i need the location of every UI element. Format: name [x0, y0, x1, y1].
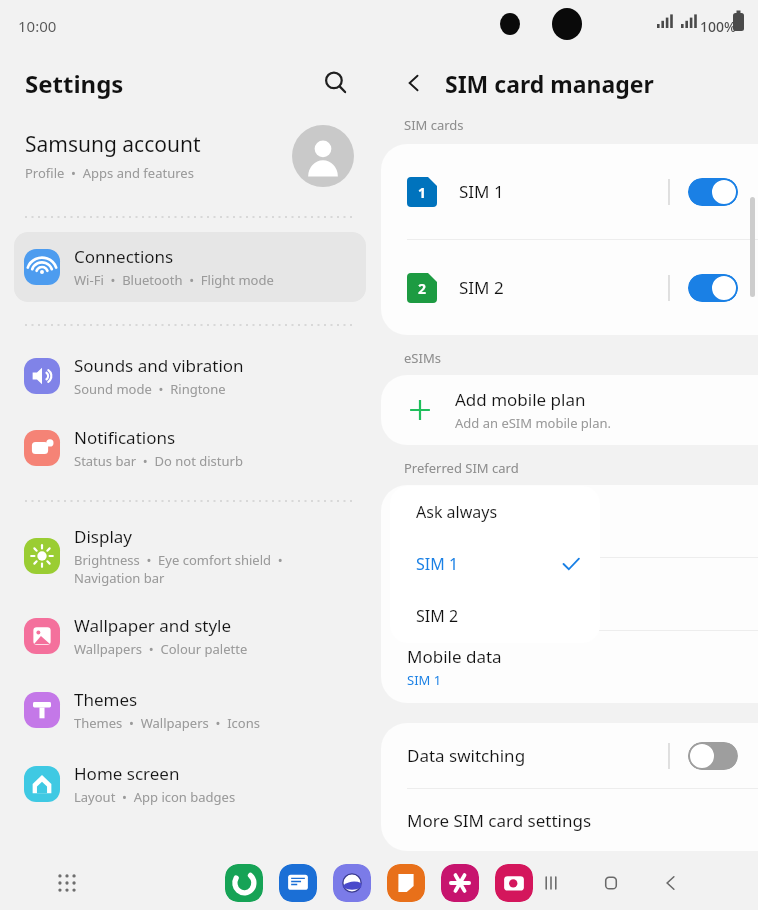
staticText: More SIM card settings: [407, 809, 592, 832]
staticText: eSIMs: [404, 349, 441, 367]
staticText: SIM 2: [416, 605, 582, 627]
staticText: Data switching: [407, 744, 668, 767]
staticText: Wallpapers • Colour palette: [74, 640, 248, 658]
staticText: Notifications: [74, 426, 176, 449]
staticText: SIM 1: [407, 598, 442, 616]
button[interactable]: Themes: [0, 678, 379, 742]
staticText: Wallpaper and style: [74, 614, 232, 637]
button[interactable]: Back: [649, 861, 693, 905]
button[interactable]: Display: [0, 518, 379, 594]
staticText: Sounds and vibration: [74, 354, 244, 377]
staticText: Ask always: [416, 501, 582, 523]
staticText: Calls: [407, 499, 445, 522]
button[interactable]: App: [441, 864, 479, 902]
button[interactable]: Off: [688, 742, 738, 770]
staticText: SIM 1: [416, 553, 560, 575]
staticText: Display: [74, 525, 132, 548]
button[interactable]: Samsung account: [0, 114, 379, 198]
staticText: 100%: [700, 17, 736, 36]
button[interactable]: More SIM card settings: [381, 789, 758, 851]
button[interactable]: Calls: [381, 485, 758, 557]
button[interactable]: Apps: [45, 861, 89, 905]
staticText: Themes • Wallpapers • Icons: [74, 714, 260, 732]
button[interactable]: Recents: [529, 861, 573, 905]
button[interactable]: App: [279, 864, 317, 902]
button[interactable]: Sounds and vibration: [0, 344, 379, 408]
staticText: SIM card manager: [445, 68, 654, 99]
button[interactable]: Home: [589, 861, 633, 905]
staticText: Profile • Apps and features: [25, 164, 194, 182]
button[interactable]: Wallpaper and style: [0, 604, 379, 668]
staticText: SIM cards: [404, 116, 464, 134]
staticText: Navigation bar: [74, 569, 165, 587]
staticText: Themes: [74, 688, 138, 711]
button[interactable]: On: [688, 178, 738, 206]
staticText: 1: [418, 183, 427, 202]
staticText: Preferred SIM card: [404, 459, 519, 477]
staticText: 2: [418, 279, 427, 298]
button[interactable]: Home screen: [0, 752, 379, 816]
button[interactable]: SIM 2: [390, 590, 600, 642]
staticText: Home screen: [74, 762, 180, 785]
button[interactable]: 1: [381, 144, 758, 239]
staticText: Add mobile plan: [455, 388, 586, 411]
button[interactable]: App: [333, 864, 371, 902]
staticText: Settings: [25, 67, 124, 100]
staticText: SIM 1: [407, 671, 442, 689]
staticText: SIM 2: [459, 276, 668, 299]
button[interactable]: Back: [393, 62, 435, 104]
button[interactable]: 2: [381, 240, 758, 335]
button[interactable]: Data switching: [381, 723, 758, 788]
staticText: SIM 1: [459, 180, 668, 203]
staticText: Layout • App icon badges: [74, 788, 236, 806]
button[interactable]: Ask always: [390, 486, 600, 538]
staticText: Sound mode • Ringtone: [74, 380, 226, 398]
button[interactable]: Mobile data: [381, 631, 758, 703]
button[interactable]: Notifications: [0, 416, 379, 480]
button[interactable]: App: [495, 864, 533, 902]
staticText: Status bar • Do not disturb: [74, 452, 243, 470]
staticText: Mobile data: [407, 645, 502, 668]
staticText: Samsung account: [25, 130, 201, 159]
button[interactable]: App: [387, 864, 425, 902]
button[interactable]: On: [688, 274, 738, 302]
button[interactable]: App: [225, 864, 263, 902]
button[interactable]: SIM 1: [390, 538, 600, 590]
button[interactable]: Search: [313, 60, 359, 106]
button[interactable]: Connections: [14, 232, 366, 302]
staticText: Wi-Fi • Bluetooth • Flight mode: [74, 271, 274, 289]
staticText: 10:00: [18, 16, 57, 36]
staticText: Brightness • Eye comfort shield •: [74, 551, 283, 569]
button[interactable]: Text messages: [381, 558, 758, 630]
staticText: Add an eSIM mobile plan.: [455, 414, 612, 432]
button[interactable]: Add mobile plan: [381, 375, 758, 445]
staticText: Connections: [74, 245, 174, 268]
